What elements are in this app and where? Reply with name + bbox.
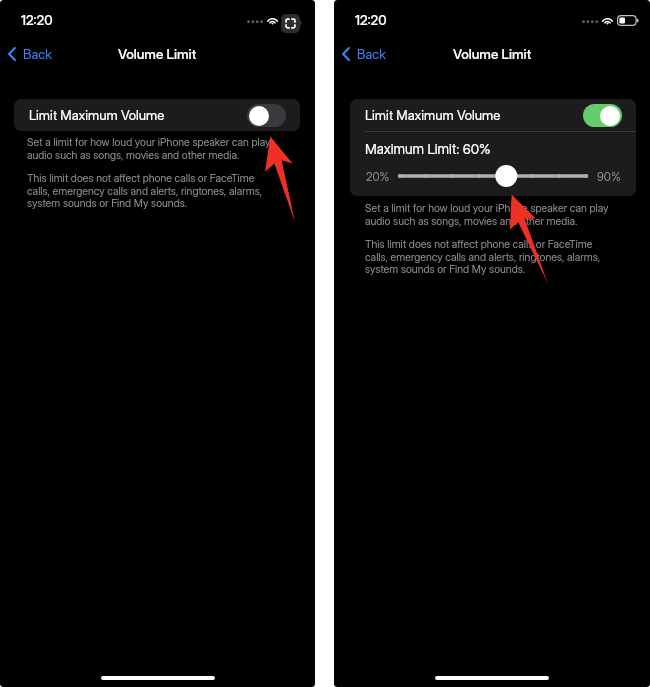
staticText: Limit Maximum Volume xyxy=(365,107,501,123)
button[interactable]: Limit maximum volume toggle xyxy=(247,104,286,127)
button[interactable]: Back xyxy=(6,43,54,65)
button[interactable]: Limit Maximum Volume xyxy=(350,99,636,131)
staticText: 12:20 xyxy=(355,12,387,28)
staticText: Maximum Limit: 60% xyxy=(365,141,491,158)
other: Wi-Fi xyxy=(266,14,279,25)
staticText: Volume Limit xyxy=(453,46,532,62)
staticText: This limit does not affect phone calls o… xyxy=(365,238,601,275)
staticText: 20% xyxy=(366,170,390,184)
other: Battery xyxy=(617,15,638,26)
button[interactable]: Back xyxy=(340,43,388,65)
button[interactable]: Limit Maximum Volume xyxy=(14,99,300,131)
other: Wi-Fi xyxy=(601,14,614,25)
staticText: This limit does not affect phone calls o… xyxy=(27,172,263,209)
staticText: 90% xyxy=(597,170,621,184)
button[interactable]: Limit maximum volume toggle xyxy=(583,104,622,127)
other: Screen recording xyxy=(281,14,300,33)
staticText: Back xyxy=(23,46,52,62)
staticText: Volume Limit xyxy=(118,46,197,62)
staticText: Set a limit for how loud your iPhone spe… xyxy=(365,202,609,227)
staticText: Limit Maximum Volume xyxy=(29,107,165,123)
staticText: Back xyxy=(357,46,386,62)
staticText: 12:20 xyxy=(21,12,53,28)
staticText: Set a limit for how loud your iPhone spe… xyxy=(27,136,271,161)
